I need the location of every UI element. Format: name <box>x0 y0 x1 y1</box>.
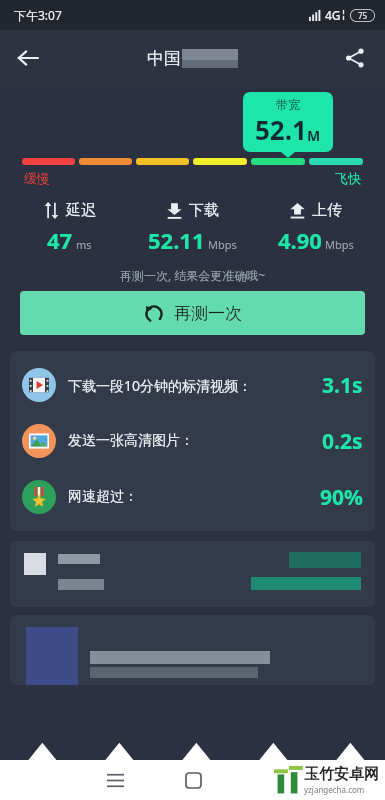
staticText: 75 <box>358 10 368 21</box>
button[interactable]: 发送一张高清图片： <box>10 413 375 469</box>
staticText: 中国 <box>147 48 181 69</box>
staticText: 玉竹安卓网 <box>304 765 379 784</box>
button[interactable]: Share <box>333 36 377 80</box>
staticText: 网速超过： <box>68 488 138 506</box>
button[interactable]: 再测一次 <box>20 291 365 335</box>
staticText: Mbps <box>208 237 237 252</box>
staticText: 4.90 <box>278 225 322 255</box>
staticText: yzjangecha.com <box>304 784 365 795</box>
staticText: 52.11 <box>148 225 205 255</box>
staticText: 3.1s <box>322 371 363 400</box>
staticText: 4G <box>325 7 341 23</box>
staticText: 下载 <box>189 201 219 220</box>
button[interactable]: Back <box>6 36 50 80</box>
staticText: Mbps <box>325 237 354 252</box>
staticText: 再测一次 <box>174 303 242 324</box>
staticText: 再测一次, 结果会更准确哦~ <box>0 267 385 283</box>
staticText: 下午3:07 <box>14 7 62 23</box>
staticText: 缓慢 <box>24 170 50 186</box>
staticText: M <box>307 126 321 145</box>
button[interactable]: 网速超过： <box>10 469 375 525</box>
button[interactable]: Menu <box>95 760 135 800</box>
staticText: 下载一段10分钟的标清视频： <box>68 376 253 395</box>
button[interactable]: Home <box>173 760 213 800</box>
button[interactable] <box>10 615 375 685</box>
staticText: 飞快 <box>335 170 361 186</box>
staticText: 带宽 <box>276 97 300 112</box>
button[interactable]: 下载一段10分钟的标清视频： <box>10 357 375 413</box>
staticText: 0.2s <box>322 427 363 456</box>
button[interactable] <box>10 541 375 607</box>
staticText: 47 <box>47 225 73 255</box>
staticText: 90% <box>320 483 363 512</box>
staticText: 上传 <box>312 201 342 220</box>
staticText: ms <box>76 237 92 252</box>
staticText: 52.1 <box>255 112 307 147</box>
staticText: 延迟 <box>66 201 96 220</box>
staticText: 发送一张高清图片： <box>68 432 194 450</box>
